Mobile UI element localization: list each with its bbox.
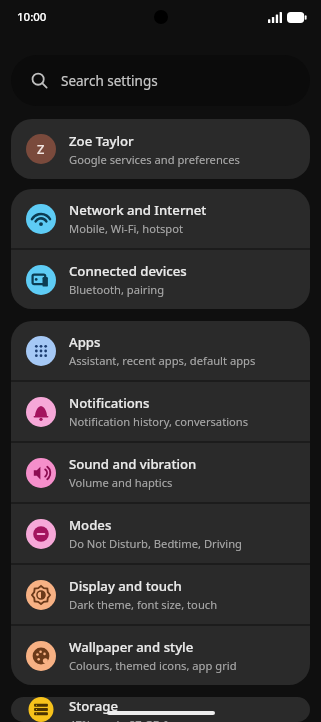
staticText: Do Not Disturb, Bedtime, Driving [69,536,242,551]
button[interactable]: Network and Internet [11,189,310,248]
staticText: Zoe Taylor [69,132,134,150]
staticText: Modes [69,516,112,534]
button[interactable]: Modes [11,504,310,563]
staticText: Network and Internet [69,201,207,219]
staticText: 47% used - 87 GB free [69,717,184,722]
button[interactable]: Connected devices [11,250,310,309]
staticText: Assistant, recent apps, default apps [69,353,256,368]
button[interactable]: Account avatar [11,119,310,179]
button[interactable]: Display and touch [11,565,310,624]
staticText: Sound and vibration [69,455,197,473]
staticText: Dark theme, font size, touch [69,597,218,612]
button[interactable]: Notifications [11,382,310,441]
staticText: Z [37,140,45,158]
staticText: Mobile, Wi-Fi, hotspot [69,221,184,236]
button[interactable]: Search settings [11,55,310,106]
staticText: Display and touch [69,577,182,595]
button[interactable]: Apps [11,321,310,380]
staticText: Bluetooth, pairing [69,282,165,297]
button[interactable]: Sound and vibration [11,443,310,502]
staticText: Wallpaper and style [69,638,194,656]
button[interactable]: Wallpaper and style [11,626,310,685]
staticText: Connected devices [69,262,187,280]
staticText: Search settings [61,72,158,90]
staticText: Volume and haptics [69,475,173,490]
staticText: Notifications [69,394,150,412]
staticText: Google services and preferences [69,152,240,167]
staticText: Storage [69,697,118,715]
staticText: Apps [69,333,101,351]
staticText: Colours, themed icons, app grid [69,658,237,673]
staticText: Notification history, conversations [69,414,249,429]
staticText: 10:00 [17,9,47,25]
other: Account avatar [26,134,56,164]
button[interactable]: Storage [11,697,310,722]
